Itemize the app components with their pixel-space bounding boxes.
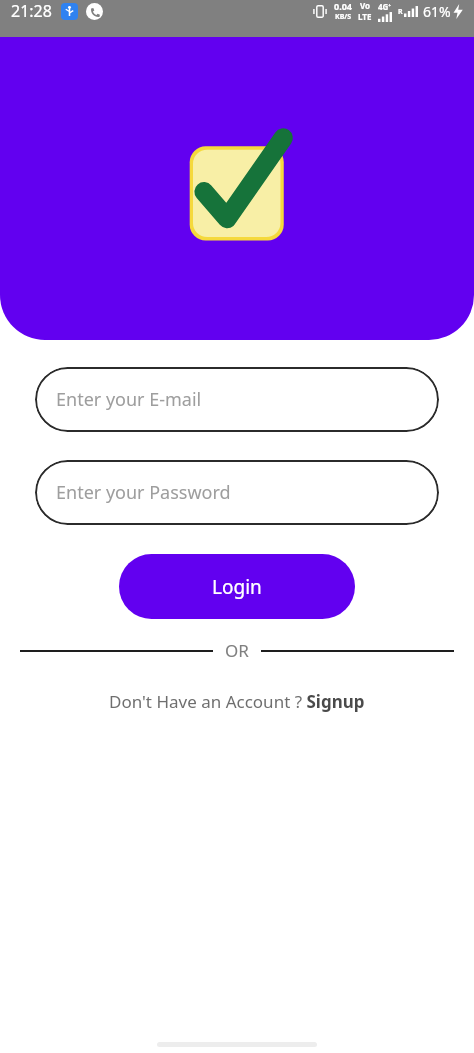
staticText: 0.04 [334, 0, 352, 12]
staticText: Enter your E-mail [56, 387, 202, 412]
staticText: LTE [358, 11, 372, 22]
staticText: 4G⁺ [378, 1, 392, 12]
staticText: Vo [360, 0, 371, 11]
staticText: R [398, 7, 403, 17]
button[interactable]: Login [119, 554, 355, 619]
button[interactable]: Enter your E-mail [35, 367, 439, 432]
staticText: 21:28 [11, 0, 52, 22]
button[interactable]: Enter your Password [35, 460, 439, 525]
button[interactable]: Don't Have an Account ? Signup [101, 688, 373, 715]
staticText: Login [212, 574, 262, 600]
staticText: OR [225, 639, 249, 662]
staticText: Don't Have an Account ? Signup [109, 690, 365, 713]
staticText: 61% [423, 2, 451, 21]
staticText: Enter your Password [56, 480, 231, 505]
staticText: KB/S [335, 12, 352, 22]
